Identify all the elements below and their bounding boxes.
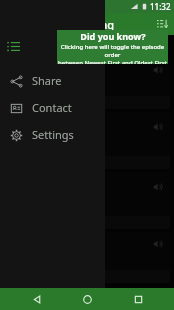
button[interactable]: Contact <box>0 94 105 121</box>
button[interactable]: Play <box>4 232 170 283</box>
button[interactable]: Gamertag <box>4 58 170 109</box>
button[interactable]: Home <box>73 288 101 310</box>
staticText: Download <box>10 98 44 108</box>
staticText: Settings <box>32 127 74 142</box>
button[interactable]: Play <box>150 236 166 252</box>
button[interactable] <box>68 38 112 54</box>
button[interactable]: Share <box>0 67 105 94</box>
button[interactable]: Recents <box>124 288 152 310</box>
button[interactable]: Did you know? <box>57 30 168 64</box>
staticText: RADIO <box>14 138 57 156</box>
staticText: Contact <box>32 100 72 115</box>
button[interactable]: Settings <box>0 121 105 148</box>
staticText: Gamertag <box>10 65 48 76</box>
button[interactable]: #127 - Spider- <box>4 112 170 169</box>
button[interactable]: More ... <box>116 38 162 54</box>
button[interactable]: Sort order <box>152 13 174 35</box>
button[interactable]: Download <box>4 156 170 169</box>
button[interactable]: Play <box>150 179 166 195</box>
staticText: Clicking here will toggle the episode or… <box>57 43 168 64</box>
button[interactable]: Download <box>4 96 170 109</box>
button[interactable]: Download <box>4 270 170 283</box>
button[interactable]: Midnight, The <box>4 172 170 229</box>
staticText: Share <box>32 73 62 88</box>
button[interactable]: Play <box>150 119 166 135</box>
staticText: RADIO <box>14 78 57 96</box>
staticText: Man Cinematic ... <box>10 127 75 138</box>
staticText: More ... <box>127 41 152 51</box>
staticText: Gamertag <box>61 17 114 32</box>
staticText: Did you know? <box>80 30 146 42</box>
button[interactable]: Play <box>150 62 166 78</box>
button[interactable]: Back <box>23 288 51 310</box>
staticText: 11:32 <box>150 1 171 12</box>
button[interactable]: Download <box>4 216 170 229</box>
